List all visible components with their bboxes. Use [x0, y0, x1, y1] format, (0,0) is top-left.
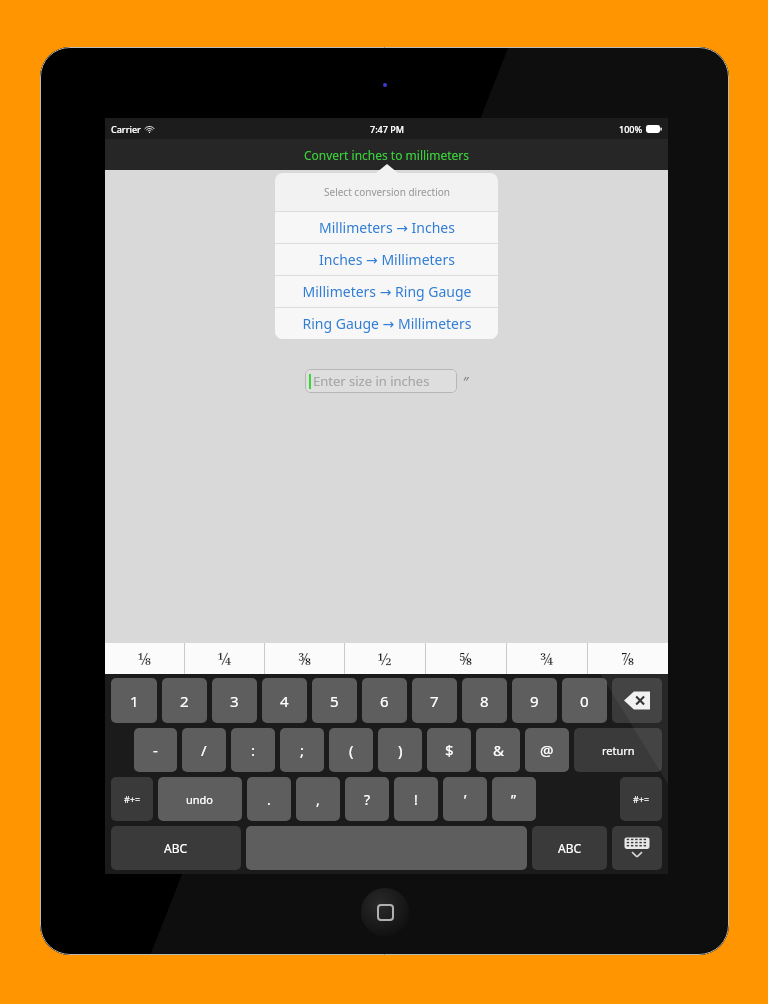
button[interactable]: 2	[162, 678, 207, 723]
staticText: 7	[430, 691, 439, 711]
button[interactable]: ?	[345, 777, 389, 821]
button[interactable]: &	[476, 728, 520, 772]
staticText: ¾	[540, 648, 554, 670]
staticText: ⅛	[138, 648, 152, 670]
staticText: Millimeters → Ring Gauge	[302, 282, 472, 301]
button[interactable]: .	[247, 777, 291, 821]
staticText: ″	[463, 372, 469, 391]
staticText: ”	[511, 790, 517, 809]
staticText: @	[540, 740, 554, 760]
button[interactable]: Backspace	[612, 678, 662, 723]
staticText: 6	[380, 691, 389, 711]
staticText: ’	[464, 790, 467, 809]
button[interactable]: ;	[280, 728, 324, 772]
button[interactable]: -	[134, 728, 177, 772]
button[interactable]: 9	[512, 678, 557, 723]
button[interactable]: 6	[362, 678, 407, 723]
button[interactable]: @	[525, 728, 569, 772]
button[interactable]: !	[394, 777, 438, 821]
button[interactable]: ’	[443, 777, 487, 821]
button[interactable]: 4	[262, 678, 307, 723]
button[interactable]: ½	[345, 643, 425, 674]
button[interactable]: 5	[312, 678, 357, 723]
button[interactable]: ABC	[532, 826, 607, 870]
staticText: $	[445, 740, 454, 760]
staticText: !	[414, 790, 418, 809]
button[interactable]: ”	[492, 777, 536, 821]
staticText: &	[493, 740, 504, 760]
button[interactable]: 7	[412, 678, 457, 723]
button[interactable]: $	[427, 728, 471, 772]
staticText: ,	[316, 790, 320, 809]
button[interactable]: Enter size in inches	[305, 369, 457, 393]
button[interactable]: (	[329, 728, 373, 772]
staticText: Inches → Millimeters	[319, 250, 455, 269]
button[interactable]: ⅛	[105, 643, 184, 674]
button[interactable]: ,	[296, 777, 340, 821]
button[interactable]: 8	[462, 678, 507, 723]
staticText: Convert inches to millimeters	[304, 147, 469, 163]
button[interactable]: Millimeters → Ring Gauge	[275, 276, 498, 307]
staticText: :	[251, 740, 256, 760]
staticText: 1	[130, 691, 139, 711]
button[interactable]: #+=	[620, 777, 662, 821]
staticText: ⅝	[459, 648, 473, 670]
staticText: ?	[364, 790, 371, 809]
staticText: ½	[378, 648, 392, 670]
button[interactable]: #+=	[111, 777, 153, 821]
staticText: Ring Gauge → Millimeters	[302, 314, 472, 333]
staticText: 7:47 PM	[370, 123, 404, 135]
button[interactable]: ABC	[111, 826, 241, 870]
staticText: 9	[530, 691, 539, 711]
staticText: 5	[330, 691, 339, 711]
button[interactable]: ⅞	[588, 643, 668, 674]
button[interactable]: undo	[158, 777, 242, 821]
button[interactable]: :	[231, 728, 275, 772]
staticText: 0	[580, 691, 589, 711]
staticText: 4	[280, 691, 289, 711]
staticText: )	[398, 740, 403, 760]
staticText: 2	[180, 691, 189, 711]
button[interactable]: /	[182, 728, 226, 772]
staticText: Enter size in inches	[313, 372, 430, 390]
staticText: undo	[186, 792, 214, 807]
button[interactable]: 1	[111, 678, 157, 723]
staticText: ;	[300, 740, 305, 760]
staticText: Carrier	[111, 123, 141, 135]
staticText: 3	[230, 691, 239, 711]
staticText: ⅜	[298, 648, 312, 670]
button[interactable]: 0	[562, 678, 607, 723]
button[interactable]: ¾	[507, 643, 587, 674]
button[interactable]: )	[378, 728, 422, 772]
staticText: Select conversion direction	[324, 185, 450, 199]
staticText: (	[349, 740, 354, 760]
staticText: #+=	[124, 793, 141, 805]
staticText: /	[201, 740, 207, 760]
staticText: .	[267, 790, 271, 809]
button[interactable]: 3	[212, 678, 257, 723]
button[interactable]: ¼	[185, 643, 264, 674]
staticText: ABC	[164, 840, 188, 856]
button[interactable]: Ring Gauge → Millimeters	[275, 308, 498, 339]
button[interactable]: ⅜	[265, 643, 344, 674]
button[interactable]: ⅝	[426, 643, 506, 674]
staticText: 100%	[619, 123, 643, 135]
staticText: ⅞	[621, 648, 635, 670]
button[interactable]: Millimeters → Inches	[275, 212, 498, 243]
staticText: #+=	[633, 793, 650, 805]
staticText: -	[153, 740, 158, 760]
button[interactable]: Hide keyboard	[612, 826, 662, 870]
staticText: ABC	[558, 840, 582, 856]
staticText: Millimeters → Inches	[319, 218, 455, 237]
staticText: ¼	[218, 648, 232, 670]
button[interactable]: Inches → Millimeters	[275, 244, 498, 275]
staticText: 8	[480, 691, 489, 711]
button[interactable]: Home	[361, 888, 409, 936]
staticText: return	[602, 743, 635, 758]
button[interactable]: return	[574, 728, 662, 772]
